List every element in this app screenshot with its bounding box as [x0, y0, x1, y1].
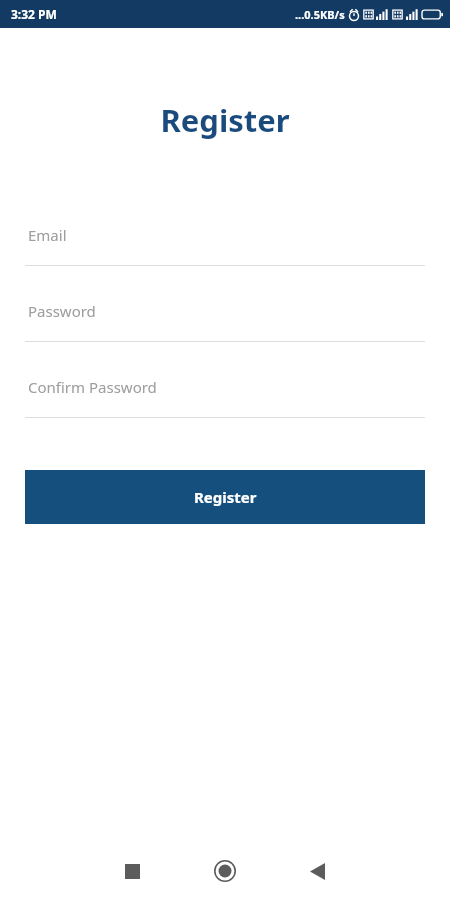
staticText: 3:32 PM [11, 6, 57, 22]
staticText: Password [28, 301, 96, 321]
button[interactable]: Confirm Password [25, 374, 425, 418]
button[interactable]: Email [25, 222, 425, 266]
staticText: ...0.5KB/s [295, 7, 345, 22]
staticText: Register [194, 487, 257, 507]
button[interactable]: Password [25, 298, 425, 342]
staticText: Email [28, 225, 67, 245]
button[interactable]: Back [293, 847, 341, 895]
button[interactable]: Recent apps [108, 847, 156, 895]
staticText: Register [0, 99, 450, 141]
staticText: Confirm Password [28, 377, 157, 397]
button[interactable]: Home [201, 847, 249, 895]
button[interactable]: Register [25, 470, 425, 524]
